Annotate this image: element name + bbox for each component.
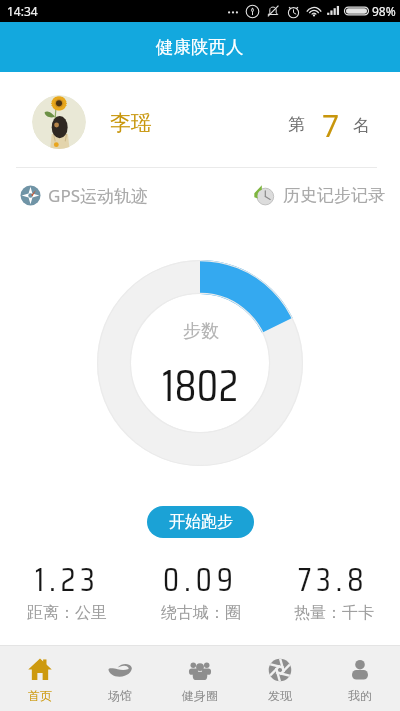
staticText: 李瑶 — [110, 110, 152, 136]
staticText: 7 — [322, 105, 340, 146]
staticText: GPS运动轨迹 — [48, 184, 148, 207]
button[interactable]: 首页 — [0, 646, 80, 711]
staticText: 14:34 — [7, 3, 38, 19]
staticText: 73.8 — [298, 554, 369, 606]
staticText: 步数 — [183, 320, 219, 343]
staticText: 1802 — [162, 351, 239, 420]
staticText: 绕古城：圈 — [161, 603, 241, 623]
staticText: 历史记步记录 — [283, 185, 385, 206]
staticText: 发现 — [268, 688, 292, 703]
staticText: 98% — [372, 3, 396, 19]
staticText: 开始跑步 — [169, 512, 233, 532]
staticText: 热量：千卡 — [294, 603, 374, 623]
staticText: 健身圈 — [182, 688, 218, 703]
staticText: 健康陕西人 — [156, 36, 244, 58]
staticText: 名 — [353, 115, 370, 136]
staticText: 第 — [288, 114, 305, 135]
button[interactable]: 历史记步记录 — [200, 184, 400, 206]
staticText: 1.23 — [35, 554, 100, 606]
staticText: 场馆 — [108, 688, 132, 703]
staticText: 距离：公里 — [27, 603, 107, 623]
staticText: 首页 — [28, 688, 52, 703]
button[interactable]: GPS运动轨迹 — [0, 184, 200, 207]
button[interactable]: 健身圈 — [160, 646, 240, 711]
button[interactable]: 场馆 — [80, 646, 160, 711]
button[interactable]: Profile photo — [32, 95, 86, 149]
staticText: 我的 — [348, 688, 372, 703]
button[interactable]: 开始跑步 — [147, 506, 254, 538]
staticText: 0.09 — [163, 554, 238, 606]
button[interactable]: 我的 — [320, 646, 400, 711]
button[interactable]: 发现 — [240, 646, 320, 711]
